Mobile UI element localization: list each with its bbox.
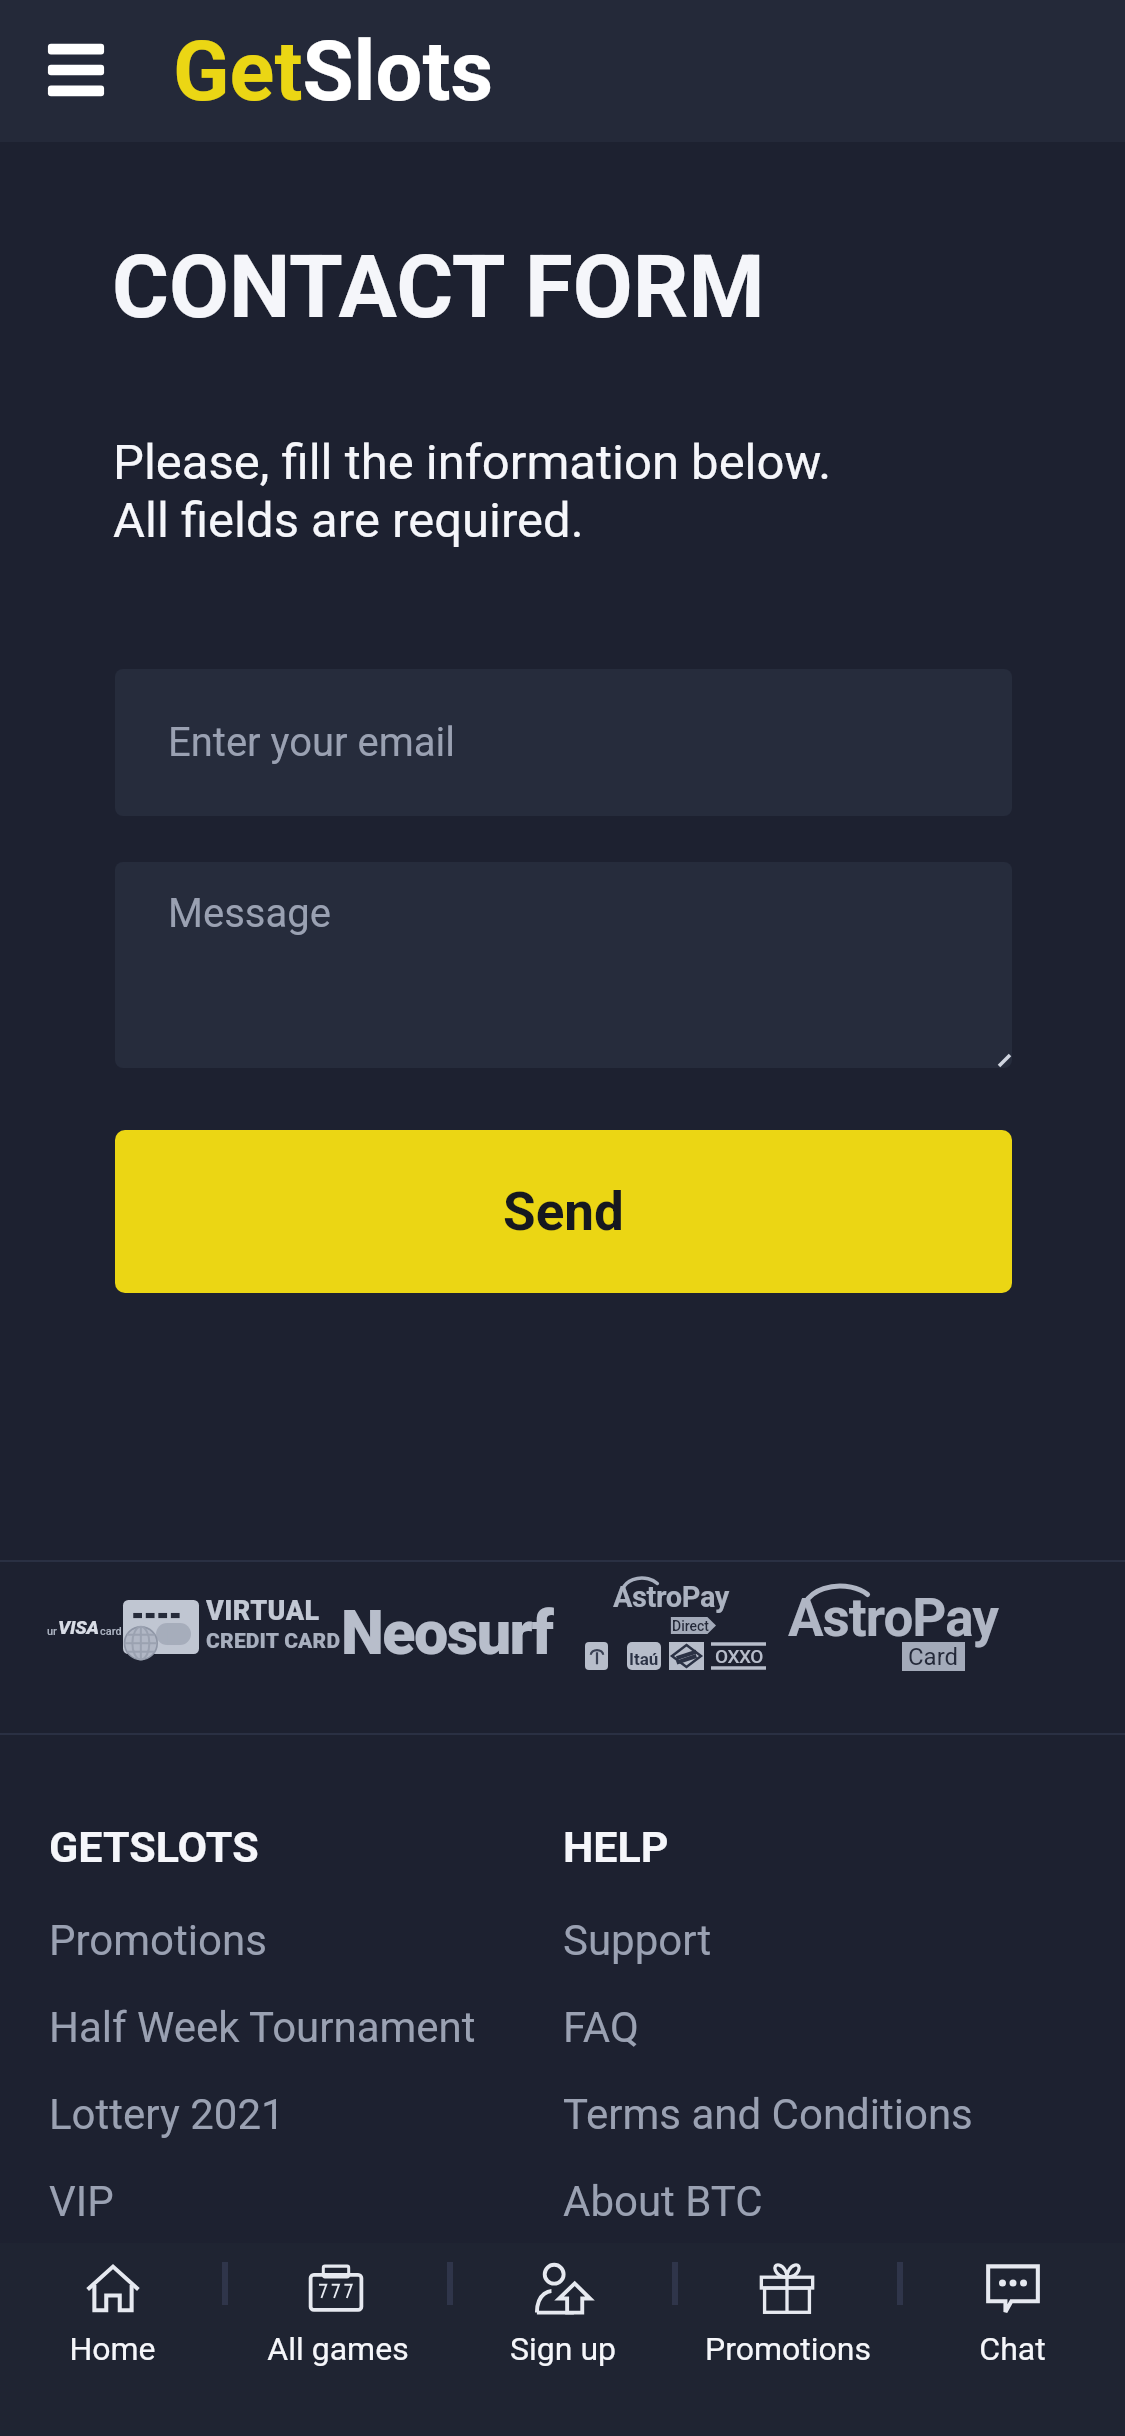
staticText: Itaú (629, 1651, 659, 1669)
button[interactable]: Message (115, 862, 1012, 1068)
button[interactable]: Open menu (40, 36, 112, 104)
button[interactable]: Terms and Conditions (563, 2071, 973, 2158)
button[interactable]: Home (0, 2243, 225, 2436)
staticText: Enter your email (168, 719, 456, 766)
button[interactable]: VIP (49, 2158, 114, 2245)
button[interactable]: Promotions (675, 2243, 900, 2436)
button[interactable]: Chat (900, 2243, 1125, 2436)
staticText: ur (47, 1625, 58, 1638)
staticText: About BTC (563, 2177, 763, 2226)
staticText: HELP (563, 1822, 669, 1872)
staticText: VIP (49, 2177, 114, 2226)
staticText: Chat (979, 2330, 1046, 2368)
staticText: GETSLOTS (49, 1822, 259, 1872)
staticText: Home (69, 2330, 156, 2368)
staticText: Promotions (705, 2330, 871, 2368)
staticText: Terms and Conditions (563, 2090, 973, 2139)
staticText: Half Week Tournament (49, 2003, 476, 2052)
staticText: VISA (58, 1616, 99, 1638)
staticText: Neosurf (341, 1597, 553, 1668)
staticText: Promotions (49, 1916, 267, 1965)
button[interactable]: Support (563, 1897, 712, 1984)
staticText: All games (267, 2330, 409, 2368)
staticText: Send (503, 1181, 624, 1243)
staticText: VIRTUAL (206, 1596, 320, 1626)
staticText: Sign up (510, 2330, 616, 2368)
button[interactable]: Enter your email (115, 669, 1012, 816)
staticText: Lottery 2021 (49, 2090, 285, 2139)
button[interactable]: FAQ (563, 1984, 639, 2071)
staticText: Support (563, 1916, 712, 1965)
staticText: Please, fill the information below. All … (113, 433, 832, 549)
button[interactable]: Sign up (450, 2243, 675, 2436)
staticText: Direct (672, 1618, 709, 1634)
button[interactable]: Promotions (49, 1897, 267, 1984)
button[interactable]: Lottery 2021 (49, 2071, 285, 2158)
staticText: Message (168, 890, 331, 937)
button[interactable]: Send (115, 1130, 1012, 1293)
staticText: OXXO (715, 1645, 763, 1667)
staticText: GetSlots (173, 23, 494, 120)
button[interactable]: About BTC (563, 2158, 763, 2245)
staticText: card (100, 1625, 122, 1638)
staticText: CONTACT FORM (112, 236, 765, 338)
button[interactable]: Half Week Tournament (49, 1984, 476, 2071)
button[interactable]: All games (225, 2243, 450, 2436)
staticText: FAQ (563, 2003, 639, 2052)
staticText: Card (908, 1644, 959, 1670)
staticText: AstroPay (613, 1580, 729, 1614)
staticText: AstroPay (788, 1587, 998, 1649)
staticText: CREDIT CARD (206, 1630, 341, 1653)
